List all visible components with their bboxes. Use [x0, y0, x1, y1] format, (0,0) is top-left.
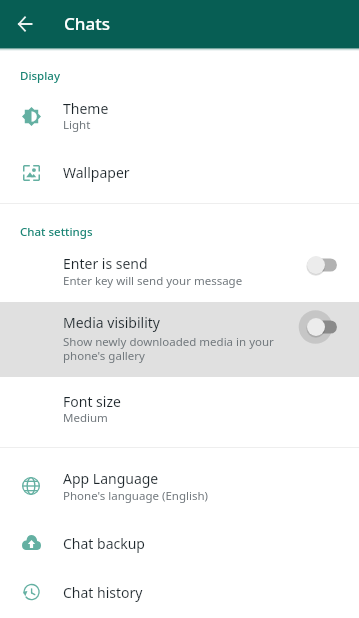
button[interactable]: Back [9, 8, 41, 40]
staticText: Theme [63, 99, 109, 118]
staticText: Chat backup [63, 534, 145, 553]
button[interactable]: Toggle Media visibility [295, 306, 337, 348]
staticText: Font size [63, 392, 121, 411]
staticText: Medium [63, 410, 108, 426]
staticText: Light [63, 117, 91, 133]
staticText: Wallpaper [63, 163, 130, 182]
button[interactable]: Toggle Enter is send [295, 244, 337, 286]
button[interactable] [0, 522, 359, 564]
staticText: Show newly downloaded media in your phon… [63, 334, 274, 363]
button[interactable] [0, 572, 359, 614]
staticText: Enter key will send your message [63, 273, 243, 289]
staticText: Chats [64, 12, 110, 35]
staticText: Chat history [63, 583, 143, 602]
staticText: Enter is send [63, 254, 148, 273]
button[interactable] [0, 383, 359, 431]
button[interactable] [0, 148, 359, 196]
button[interactable] [0, 246, 359, 296]
button[interactable] [0, 302, 359, 377]
staticText: Chat settings [20, 224, 93, 240]
button[interactable] [0, 458, 359, 510]
button[interactable] [0, 90, 359, 142]
staticText: Media visibility [63, 313, 160, 332]
staticText: Display [20, 68, 60, 84]
staticText: Phone's language (English) [63, 488, 208, 504]
staticText: App Language [63, 469, 159, 488]
